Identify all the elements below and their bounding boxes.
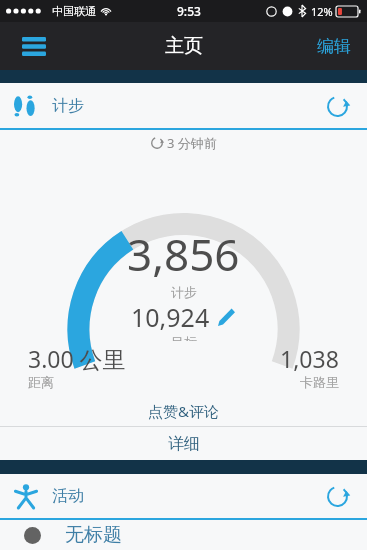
staticText: 1,038 [280,343,339,374]
button[interactable]: 点赞&评论 [0,396,367,426]
staticText: 12% [311,4,333,19]
staticText: 距离 [28,374,54,390]
button[interactable]: 详细 [0,427,367,460]
staticText: 主页 [165,34,203,58]
staticText: 编辑 [317,36,351,57]
staticText: 卡路里 [300,374,339,390]
button[interactable]: 编辑 [309,26,359,67]
button[interactable]: Refresh activity [315,474,359,518]
button[interactable]: 无标题 [0,520,367,550]
staticText: 中国联通 [52,4,96,18]
staticText: 计步 [171,284,197,300]
staticText: 活动 [52,486,84,506]
button[interactable]: Menu [12,24,56,68]
staticText: 目标 [171,334,197,341]
staticText: 9:53 [177,3,201,19]
button[interactable]: Refresh [315,84,359,128]
staticText: 3,856 [127,224,240,284]
staticText: 10,924 [131,300,210,334]
staticText: 3.00 公里 [28,343,126,374]
button[interactable]: 活动 [0,474,367,518]
staticText: 无标题 [65,523,122,547]
button[interactable]: Edit goal [216,307,236,327]
button[interactable]: 计步 [0,83,367,128]
staticText: 点赞&评论 [148,401,219,421]
staticText: 计步 [52,96,84,116]
staticText: 详细 [168,434,200,454]
staticText: 3 分钟前 [167,134,217,152]
